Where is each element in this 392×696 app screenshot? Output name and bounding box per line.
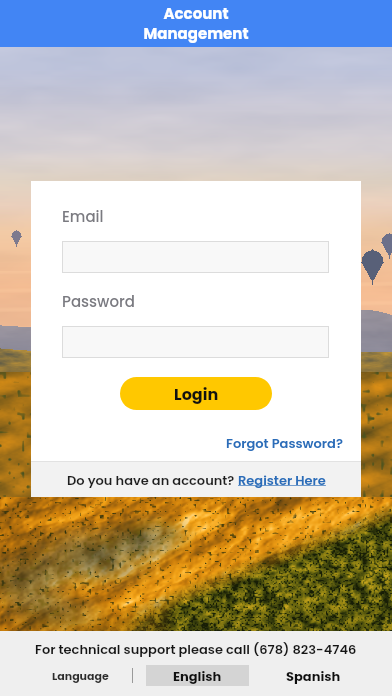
staticText: Do you have an account?: [67, 471, 238, 489]
button[interactable]: Register Here: [238, 471, 326, 489]
button[interactable]: Forgot Password?: [226, 434, 343, 452]
button[interactable]: [62, 326, 329, 358]
staticText: English: [173, 667, 222, 685]
staticText: Password: [62, 291, 135, 312]
button[interactable]: Login: [120, 377, 272, 410]
button[interactable]: [62, 241, 329, 273]
button[interactable]: Language: [52, 668, 109, 683]
staticText: Email: [62, 206, 104, 227]
button[interactable]: English: [146, 665, 249, 686]
staticText: Register Here: [238, 471, 326, 489]
staticText: For technical support please call (678) …: [35, 640, 357, 658]
staticText: Login: [174, 383, 219, 405]
staticText: Forgot Password?: [226, 434, 343, 452]
staticText: Language: [52, 668, 109, 683]
staticText: Spanish: [286, 667, 341, 685]
button[interactable]: Spanish: [286, 667, 341, 685]
staticText: Account Management: [143, 3, 249, 45]
